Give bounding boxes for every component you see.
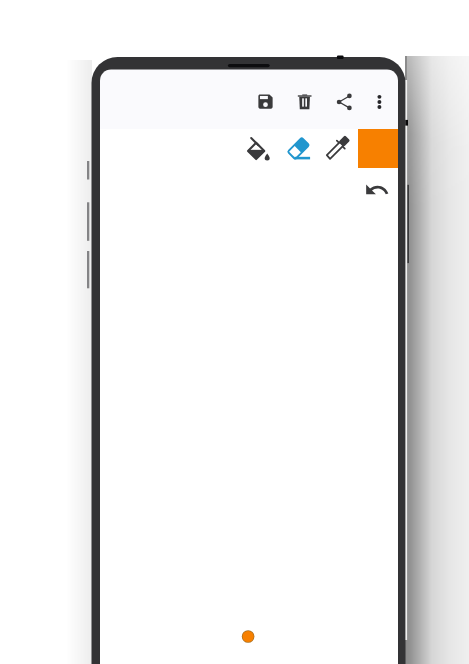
button[interactable]: Undo <box>364 177 390 203</box>
button[interactable]: More options <box>370 92 389 111</box>
button[interactable]: Delete <box>296 92 315 111</box>
button[interactable]: Eraser <box>285 135 313 163</box>
button[interactable]: Share <box>335 92 354 111</box>
button[interactable]: Colour picker <box>327 135 352 160</box>
button[interactable]: Save <box>256 92 275 111</box>
button[interactable]: Fill colour <box>243 135 271 163</box>
